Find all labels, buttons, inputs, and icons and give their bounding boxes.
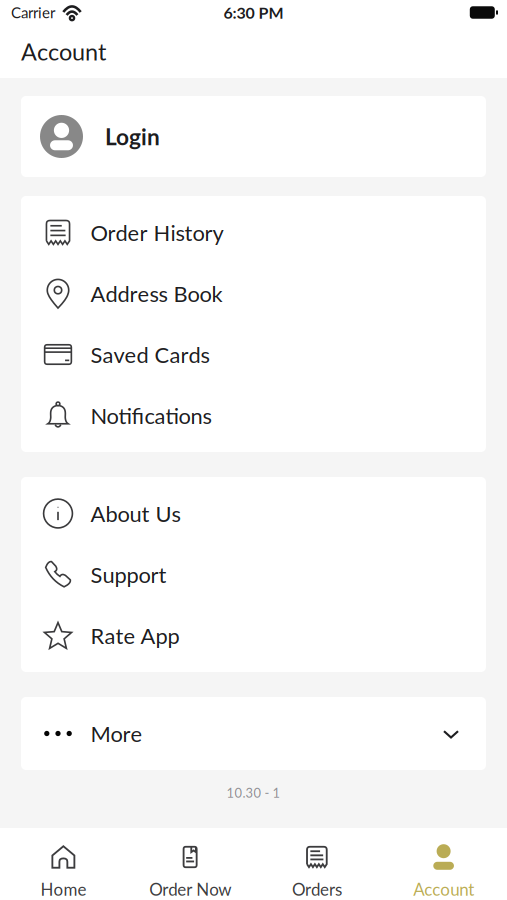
- button[interactable]: Address Book: [21, 263, 486, 324]
- button[interactable]: Account: [380, 828, 507, 900]
- staticText: Order Now: [149, 879, 231, 899]
- button[interactable]: Rate App: [21, 605, 486, 666]
- button[interactable]: Support: [21, 544, 486, 605]
- button[interactable]: Login: [21, 96, 486, 177]
- staticText: More: [90, 720, 142, 747]
- staticText: Notifications: [90, 402, 211, 429]
- staticText: Saved Cards: [90, 341, 209, 368]
- button[interactable]: More: [21, 703, 486, 764]
- button[interactable]: Saved Cards: [21, 324, 486, 385]
- staticText: Account: [413, 879, 474, 899]
- staticText: Order History: [90, 219, 223, 246]
- button[interactable]: Order Now: [127, 828, 254, 900]
- staticText: Carrier: [11, 3, 55, 22]
- button[interactable]: Orders: [253, 828, 380, 900]
- staticText: About Us: [90, 500, 180, 527]
- staticText: Support: [90, 561, 166, 588]
- button[interactable]: Order History: [21, 202, 486, 263]
- button[interactable]: Notifications: [21, 385, 486, 446]
- staticText: Account: [21, 37, 106, 66]
- button[interactable]: About Us: [21, 483, 486, 544]
- staticText: Login: [105, 123, 160, 150]
- staticText: Orders: [292, 879, 342, 899]
- staticText: Rate App: [90, 622, 179, 649]
- staticText: 6:30 PM: [223, 3, 283, 22]
- button[interactable]: Home: [0, 828, 127, 900]
- staticText: 10.30 - 1: [226, 785, 280, 800]
- staticText: Home: [40, 879, 86, 899]
- staticText: Address Book: [90, 280, 222, 307]
